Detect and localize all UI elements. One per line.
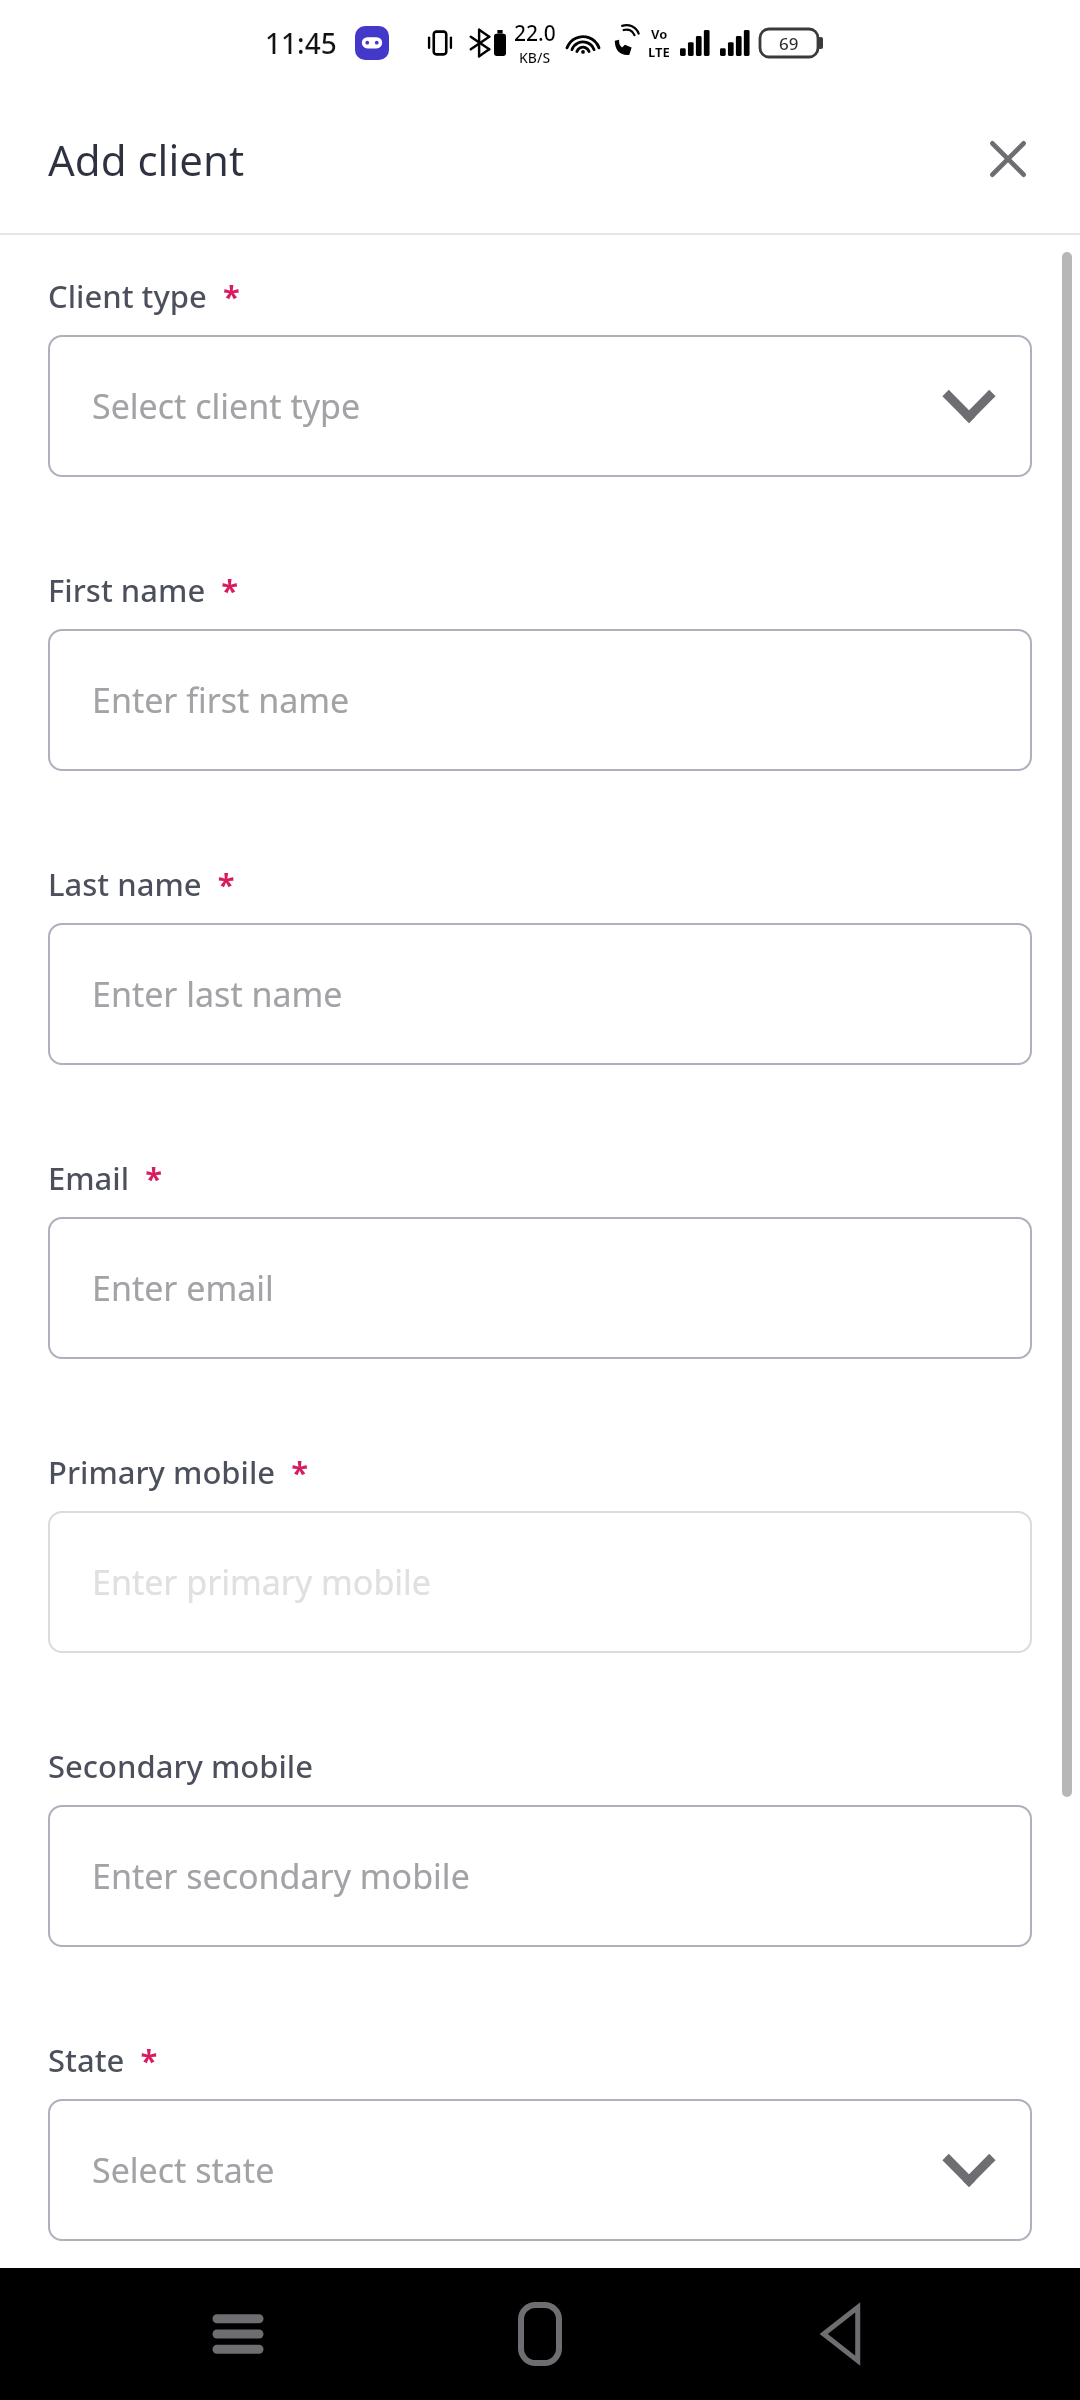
- button[interactable]: Home: [475, 2269, 605, 2399]
- staticText: Vo: [651, 25, 668, 43]
- staticText: Last name *: [48, 863, 235, 905]
- staticText: Client type *: [48, 275, 240, 317]
- staticText: Enter primary mobile: [92, 1559, 432, 1605]
- button[interactable]: Select client type: [48, 335, 1032, 477]
- staticText: Enter last name: [92, 971, 343, 1017]
- button[interactable]: Close: [960, 111, 1056, 207]
- staticText: Select state: [92, 2147, 275, 2193]
- button[interactable]: Select state: [48, 2099, 1032, 2241]
- staticText: Add client: [48, 131, 245, 188]
- staticText: 22.0: [514, 19, 556, 48]
- staticText: LTE: [648, 43, 670, 61]
- staticText: Enter secondary mobile: [92, 1853, 470, 1899]
- button[interactable]: Enter email: [48, 1217, 1032, 1359]
- button[interactable]: Back: [778, 2269, 908, 2399]
- staticText: First name *: [48, 569, 239, 611]
- button[interactable]: Enter last name: [48, 923, 1032, 1065]
- button[interactable]: Recent apps: [173, 2269, 303, 2399]
- button[interactable]: Enter first name: [48, 629, 1032, 771]
- staticText: 11:45: [265, 24, 337, 62]
- staticText: Enter first name: [92, 677, 350, 723]
- staticText: Select client type: [92, 383, 361, 429]
- button[interactable]: Enter primary mobile: [48, 1511, 1032, 1653]
- staticText: Secondary mobile: [48, 1745, 313, 1787]
- staticText: Email *: [48, 1157, 163, 1199]
- button[interactable]: Enter secondary mobile: [48, 1805, 1032, 1947]
- staticText: Enter email: [92, 1265, 274, 1311]
- staticText: State *: [48, 2039, 158, 2081]
- staticText: Primary mobile *: [48, 1451, 308, 1493]
- staticText: 69: [779, 32, 799, 55]
- staticText: KB/S: [519, 48, 551, 67]
